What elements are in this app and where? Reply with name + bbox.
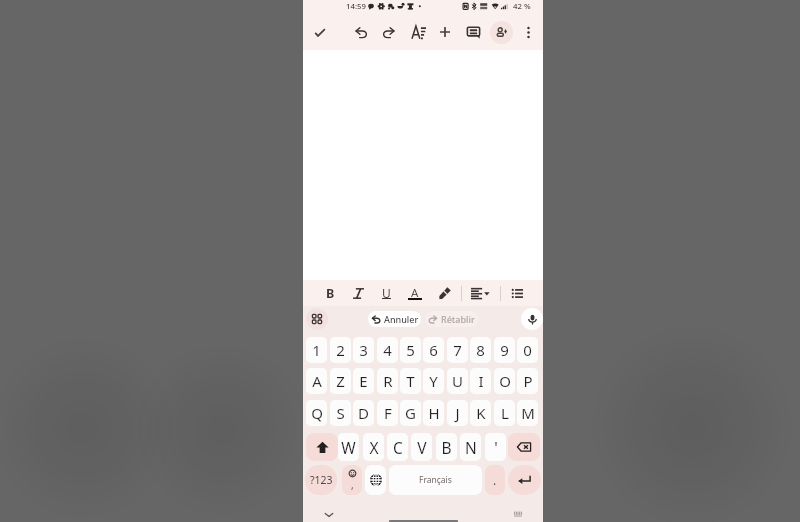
button[interactable]: L [494,400,515,426]
button[interactable]: Redo [377,20,401,44]
staticText: I [478,371,484,391]
staticText: U [452,371,463,391]
button[interactable]: 9 [494,337,515,363]
button[interactable]: Done [308,20,332,44]
button[interactable]: Insert [433,20,457,44]
button[interactable]: X [363,433,384,461]
button[interactable]: Underline [375,282,397,304]
button[interactable]: 0 [517,337,538,363]
button[interactable]: Y [423,368,444,394]
staticText: J [455,403,460,423]
button[interactable]: Q [306,400,327,426]
staticText: 2 [336,340,345,360]
staticText: , [351,478,354,492]
button[interactable]: B [436,433,457,461]
button[interactable]: Emoji, comma [342,465,362,495]
button[interactable]: D [353,400,374,426]
button[interactable]: 8 [470,337,491,363]
button[interactable]: 4 [377,337,398,363]
button[interactable]: Share [490,21,513,44]
staticText: X [369,437,379,458]
button[interactable]: 7 [447,337,468,363]
staticText: H [428,403,440,423]
staticText: E [359,371,368,391]
button[interactable]: A [306,368,327,394]
button[interactable]: 5 [400,337,421,363]
button[interactable]: U [447,368,468,394]
button[interactable]: Rétablir [425,311,478,327]
staticText: A [411,285,419,300]
button[interactable]: W [338,433,359,461]
button[interactable]: Enter [508,465,541,495]
button[interactable]: Text colour [403,282,425,304]
button[interactable]: List [506,282,528,304]
button[interactable]: C [387,433,408,461]
staticText: Français [419,474,452,486]
button[interactable]: Space [389,465,482,495]
staticText: Q [311,403,323,423]
button[interactable]: 2 [330,337,351,363]
staticText: 7 [453,340,462,360]
staticText: A [312,371,322,391]
button[interactable]: S [330,400,351,426]
staticText: G [405,403,416,423]
button[interactable]: Change language [365,465,386,495]
button[interactable]: More options [516,20,540,44]
button[interactable]: Hide keyboard [320,506,338,522]
staticText: T [406,371,415,391]
button[interactable]: H [423,400,444,426]
button[interactable]: V [411,433,432,461]
button[interactable]: J [447,400,468,426]
button[interactable]: G [400,400,421,426]
button[interactable]: 6 [423,337,444,363]
staticText: 6 [429,340,438,360]
staticText: Z [336,371,345,391]
staticText: B [326,285,335,302]
staticText: ' [494,437,498,458]
button[interactable]: Annuler [368,311,421,327]
button[interactable]: 3 [353,337,374,363]
button[interactable]: Toolbar [306,308,328,330]
staticText: 14:59 [346,1,366,12]
button[interactable]: Comment [461,20,485,44]
button[interactable]: Highlight [434,282,456,304]
button[interactable]: Alignment [469,282,491,304]
button[interactable]: Bold [319,282,341,304]
staticText: 42 % [513,1,531,12]
button[interactable]: E [353,368,374,394]
button[interactable]: N [460,433,481,461]
button[interactable]: I [470,368,491,394]
button[interactable]: O [494,368,515,394]
staticText: U [382,285,391,299]
staticText: M [521,403,535,423]
button[interactable]: Voice input [521,308,543,330]
button[interactable]: Italic [347,282,369,304]
staticText: L [501,403,509,423]
staticText: Rétablir [441,313,475,325]
button[interactable]: Z [330,368,351,394]
staticText: S [336,403,345,423]
staticText: P [523,371,533,391]
button[interactable]: 1 [306,337,327,363]
button[interactable]: R [377,368,398,394]
button[interactable]: ?123 [305,465,337,495]
staticText: W [341,437,356,458]
staticText: D [358,403,369,423]
button[interactable]: Shift [306,433,338,461]
button[interactable]: Keyboard settings [509,505,527,522]
button[interactable]: T [400,368,421,394]
staticText: N [465,437,477,458]
staticText: 0 [523,340,532,360]
button[interactable]: F [377,400,398,426]
button[interactable]: Undo [349,20,373,44]
button[interactable]: . [485,465,505,495]
staticText: 8 [476,340,485,360]
staticText: 3 [359,340,368,360]
button[interactable]: Text formatting [407,20,431,44]
button[interactable]: M [517,400,538,426]
button[interactable]: K [470,400,491,426]
button[interactable]: ' [485,433,506,461]
button[interactable]: P [517,368,538,394]
button[interactable]: Backspace [508,433,540,461]
staticText: Annuler [384,313,419,325]
